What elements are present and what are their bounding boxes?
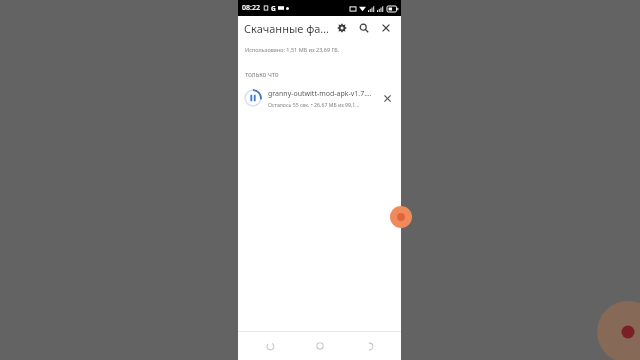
- staticText: только что: [245, 70, 279, 79]
- button[interactable]: Back: [253, 332, 287, 360]
- staticText: G: [271, 4, 276, 13]
- button[interactable]: Settings: [333, 19, 351, 37]
- staticText: Осталось 55 сек. • 26,67 МБ из 99,1...: [268, 101, 360, 108]
- button[interactable]: Search: [355, 19, 373, 37]
- staticText: Использовано: 1,51 МБ из 23,69 ГБ.: [245, 46, 340, 53]
- button[interactable]: Floating assistant: [390, 206, 412, 228]
- button[interactable]: Pause download: [244, 89, 262, 107]
- button[interactable]: Home: [303, 332, 337, 360]
- button[interactable]: Recent apps: [352, 332, 386, 360]
- staticText: 08:22: [242, 3, 260, 13]
- staticText: Скачанные фай...: [244, 21, 333, 36]
- button[interactable]: Cancel download: [379, 90, 395, 106]
- button[interactable]: Close: [377, 19, 395, 37]
- button[interactable]: Pause download: [238, 82, 401, 114]
- staticText: granny-outwitt-mod-apk-v1.7.9.a...: [268, 89, 375, 99]
